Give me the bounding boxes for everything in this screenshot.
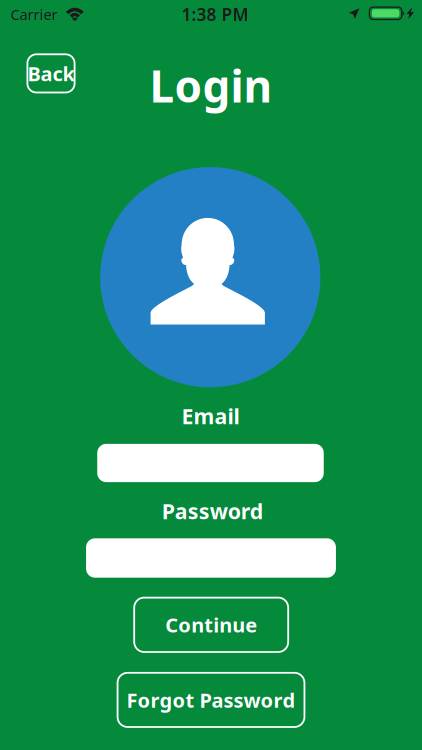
staticText: 1:38 PM [181, 3, 248, 26]
staticText: Login [149, 56, 272, 115]
button[interactable]: Continue [134, 598, 288, 652]
staticText: Email [181, 402, 239, 430]
button[interactable]: Email [97, 444, 324, 482]
staticText: Continue [165, 611, 257, 638]
button[interactable]: Back [27, 54, 75, 92]
staticText: Back [27, 60, 74, 87]
button[interactable]: Password [86, 538, 336, 578]
button[interactable]: Forgot Password [117, 673, 304, 727]
staticText: Password [162, 497, 263, 525]
staticText: Forgot Password [126, 687, 295, 713]
staticText: Carrier [10, 5, 57, 24]
